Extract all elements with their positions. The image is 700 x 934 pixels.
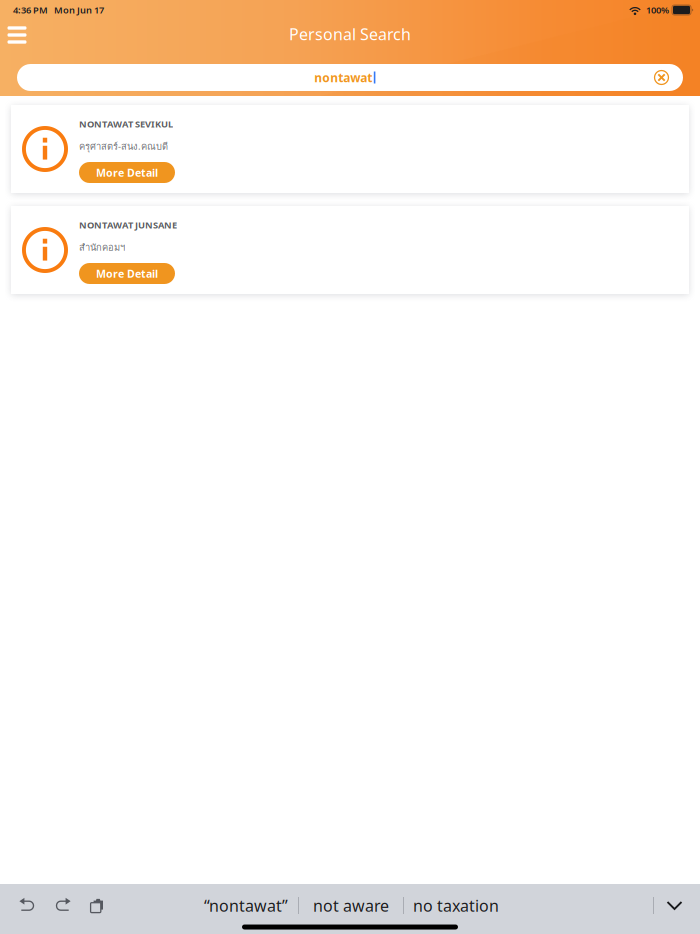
button[interactable]: Redo (45, 889, 80, 922)
staticText: nontawat (314, 69, 372, 85)
staticText: 4:36 PM (13, 4, 48, 16)
button[interactable]: Clear text (640, 64, 683, 91)
staticText: ครุศาสตร์-สนง.คณบดี (79, 139, 168, 154)
staticText: Mon Jun 17 (54, 4, 104, 16)
staticText: 100% (646, 4, 669, 16)
staticText: “nontawat” (204, 895, 288, 916)
button[interactable]: More Detail (79, 263, 175, 284)
button[interactable]: “nontawat” (194, 889, 298, 922)
button[interactable]: no taxation (404, 889, 508, 922)
staticText: not aware (313, 895, 389, 916)
staticText: NONTAWAT JUNSANE (79, 219, 177, 231)
button[interactable]: Undo (10, 889, 45, 922)
button[interactable]: Menu (0, 20, 35, 50)
staticText: More Detail (96, 165, 158, 180)
staticText: no taxation (413, 895, 499, 916)
staticText: สำนักคอมฯ (79, 240, 125, 255)
button[interactable]: Hide keyboard (659, 889, 689, 922)
button[interactable]: Paste (80, 889, 115, 922)
button[interactable]: not aware (299, 889, 403, 922)
staticText: NONTAWAT SEVIKUL (79, 118, 173, 130)
staticText: More Detail (96, 266, 158, 281)
button[interactable]: More Detail (79, 162, 175, 183)
staticText: Personal Search (289, 23, 411, 45)
